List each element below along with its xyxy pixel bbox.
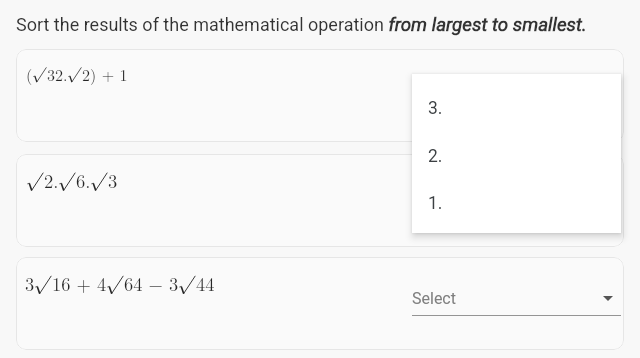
staticText: 3. (428, 98, 443, 119)
button[interactable]: ( (16, 49, 624, 142)
staticText: Sort the results of the mathematical ope… (16, 14, 587, 36)
button[interactable]: 3. (412, 84, 621, 132)
button[interactable]: 2. (16, 154, 624, 247)
staticText: 3 (25, 270, 35, 296)
staticText: 44 (196, 270, 215, 296)
staticText: 1. (428, 193, 443, 214)
staticText: 6. (76, 167, 91, 193)
button[interactable]: 1. (412, 180, 621, 226)
staticText: ( (26, 63, 33, 86)
staticText: 2. (428, 146, 443, 167)
staticText: 2) + 1 (82, 63, 128, 86)
staticText: Select (412, 186, 456, 205)
staticText: 32. (47, 63, 68, 86)
button[interactable]: Select (412, 81, 621, 108)
staticText: Select (412, 289, 456, 308)
other: Open dropdown (603, 296, 613, 301)
staticText: 2. (44, 167, 59, 193)
staticText: 16 + 4 (52, 270, 107, 296)
staticText: 3 (108, 167, 118, 193)
button[interactable]: Select (412, 186, 621, 213)
button[interactable]: Select (412, 289, 621, 316)
staticText: 64 − 3 (124, 270, 179, 296)
button[interactable]: 2. (412, 132, 621, 180)
button[interactable]: 3 (16, 257, 624, 350)
